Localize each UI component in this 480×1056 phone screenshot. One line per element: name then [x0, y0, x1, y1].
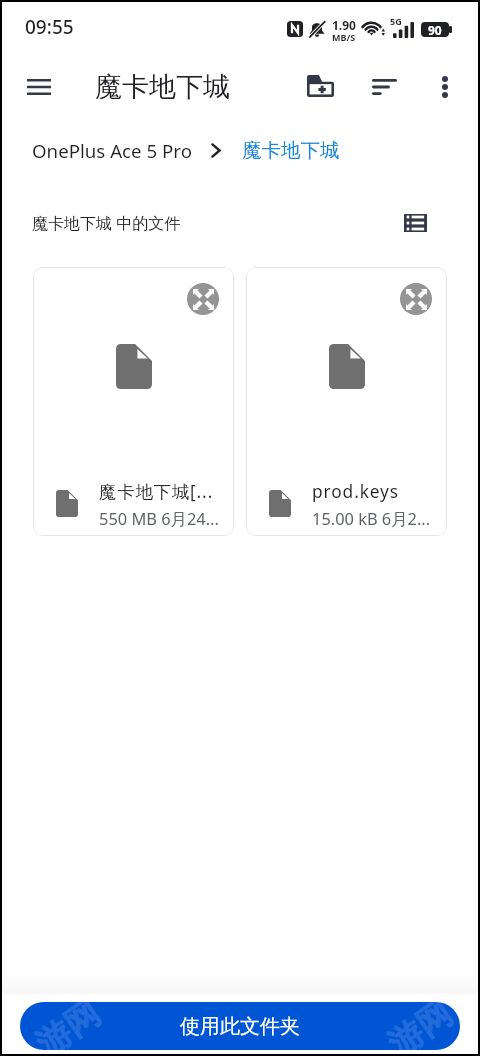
button[interactable]: Expand preview: [400, 283, 432, 315]
staticText: 魔卡地下城[...: [99, 480, 214, 504]
staticText: 使用此文件夹: [180, 1014, 300, 1039]
staticText: 魔卡地下城: [95, 70, 230, 104]
staticText: 游网: [380, 1002, 460, 1050]
staticText: 550 MB 6月24...: [99, 507, 219, 529]
button[interactable]: Expand preview: [187, 283, 219, 315]
staticText: 90: [428, 22, 442, 37]
button[interactable]: 魔卡地下城: [242, 138, 340, 163]
button[interactable]: New folder: [298, 65, 342, 109]
button[interactable]: More options: [423, 65, 467, 109]
button[interactable]: OnePlus Ace 5 Pro: [32, 138, 192, 163]
button[interactable]: Sort: [362, 65, 406, 109]
staticText: 5G: [390, 15, 402, 27]
staticText: MB/S: [332, 31, 356, 43]
staticText: 15.00 kB 6月2...: [312, 507, 431, 529]
button[interactable]: Expand preview: [246, 267, 447, 536]
button[interactable]: Menu: [15, 63, 63, 111]
button[interactable]: 游网: [20, 1002, 460, 1050]
staticText: 09:55: [25, 14, 74, 40]
staticText: 1.90: [332, 17, 356, 33]
button[interactable]: List view: [395, 203, 435, 243]
staticText: 游网: [28, 1002, 108, 1050]
staticText: prod.keys: [312, 480, 400, 504]
button[interactable]: Expand preview: [33, 267, 234, 536]
staticText: 魔卡地下城 中的文件: [32, 212, 181, 234]
